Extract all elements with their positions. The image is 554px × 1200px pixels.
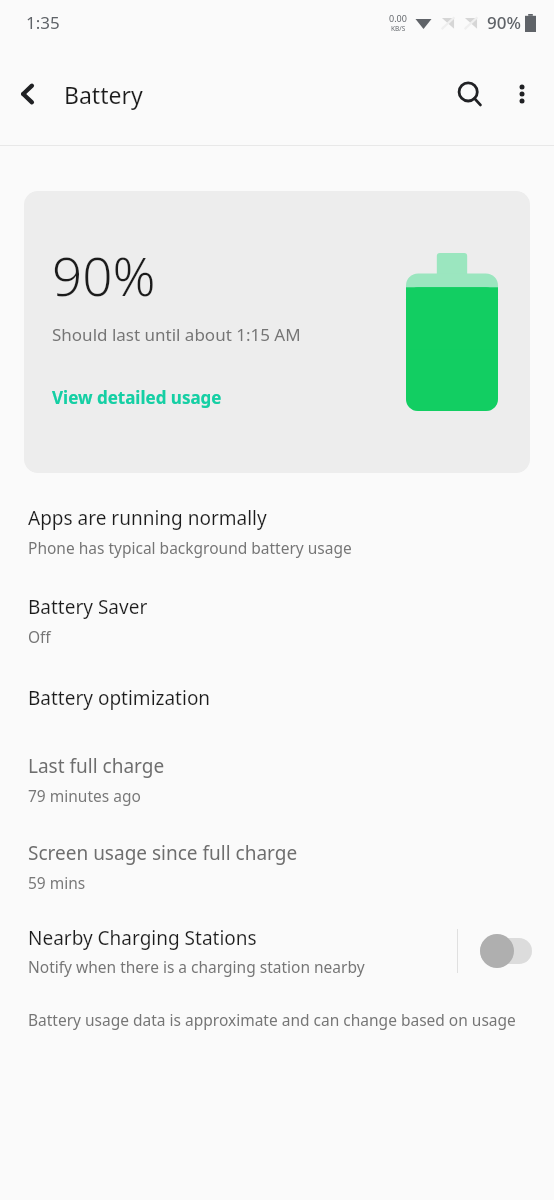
button[interactable]: Nearby Charging Stations (0, 925, 554, 977)
button[interactable]: Last full charge (0, 753, 554, 806)
staticText: KB/S (391, 24, 406, 33)
staticText: View detailed usage (52, 386, 222, 409)
staticText: Battery optimization (28, 685, 211, 711)
staticText: Battery (64, 79, 143, 110)
button[interactable]: 90% (24, 191, 530, 473)
staticText: Notify when there is a charging station … (28, 956, 365, 977)
staticText: Battery usage data is approximate and ca… (28, 1009, 516, 1030)
button[interactable]: Screen usage since full charge (0, 840, 554, 893)
button[interactable]: Back (0, 66, 56, 122)
staticText: Apps are running normally (28, 505, 267, 531)
staticText: Last full charge (28, 753, 165, 779)
staticText: 0.00 (389, 12, 407, 24)
staticText: Battery Saver (28, 594, 148, 620)
staticText: Nearby Charging Stations (28, 925, 257, 951)
button[interactable]: Battery Saver (0, 594, 554, 647)
staticText: 90% (487, 11, 521, 34)
staticText: 59 mins (28, 872, 86, 893)
staticText: Phone has typical background battery usa… (28, 537, 352, 558)
button[interactable]: Search (444, 68, 496, 120)
staticText: 90% (52, 239, 156, 311)
staticText: Should last until about 1:15 AM (52, 323, 301, 346)
staticText: 79 minutes ago (28, 785, 141, 806)
staticText: Off (28, 626, 51, 647)
button[interactable]: Nearby Charging Stations toggle (480, 934, 532, 968)
button[interactable]: Apps are running normally (0, 505, 554, 558)
staticText: 1:35 (26, 11, 60, 34)
staticText: Screen usage since full charge (28, 840, 298, 866)
button[interactable]: More options (496, 68, 548, 120)
button[interactable]: View detailed usage (52, 386, 222, 409)
button[interactable]: Battery optimization (0, 685, 554, 711)
